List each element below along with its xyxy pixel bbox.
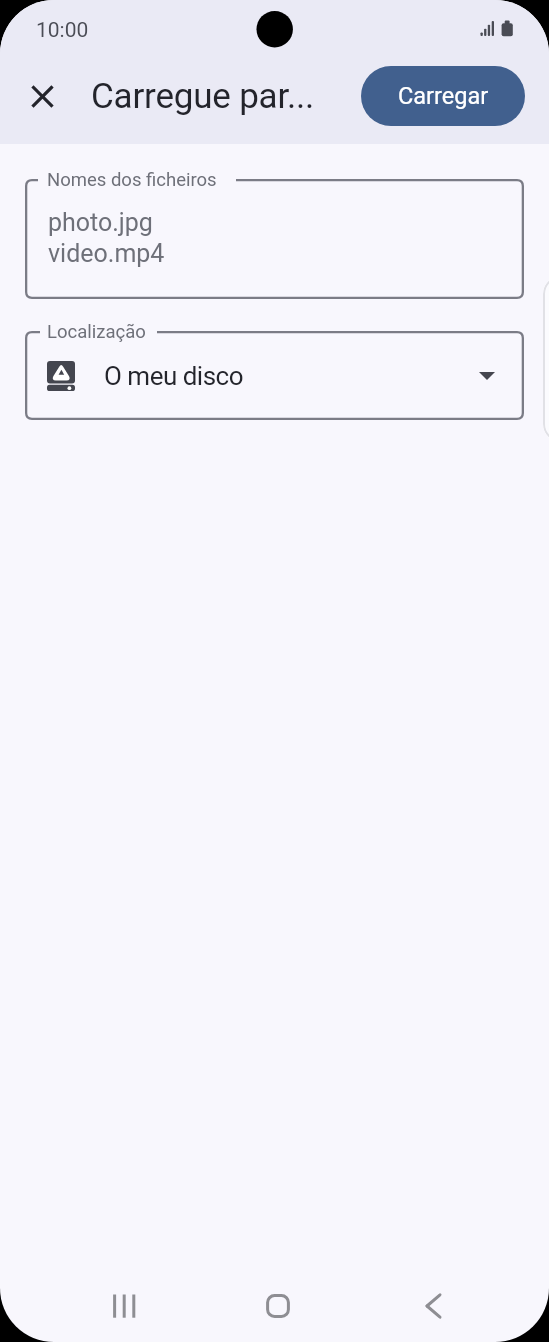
staticText: video.mp4 — [48, 239, 165, 268]
staticText: Carregar — [398, 82, 489, 110]
button[interactable]: Home — [246, 1274, 310, 1338]
button[interactable]: Close — [19, 73, 66, 120]
button[interactable]: Back — [402, 1274, 466, 1338]
staticText: O meu disco — [104, 361, 244, 391]
button[interactable]: Recent apps — [92, 1274, 156, 1338]
button[interactable]: Carregar — [361, 66, 525, 126]
staticText: 10:00 — [36, 18, 89, 43]
staticText: Localização — [47, 321, 146, 343]
staticText: Carregue par... — [91, 76, 315, 117]
staticText: Nomes dos ficheiros — [47, 169, 217, 191]
staticText: photo.jpg — [48, 208, 153, 237]
